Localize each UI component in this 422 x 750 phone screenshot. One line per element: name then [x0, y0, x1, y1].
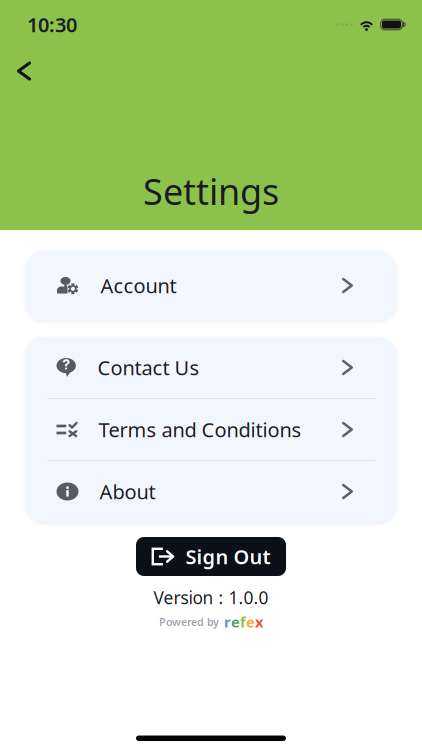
staticText: f	[240, 612, 246, 631]
button[interactable]: Back	[2, 49, 46, 93]
staticText: e	[246, 612, 255, 631]
staticText: Account	[100, 272, 176, 299]
staticText: r	[224, 612, 231, 631]
button[interactable]: About	[26, 461, 396, 522]
staticText: Version : 1.0.0	[153, 586, 268, 609]
staticText: Powered by	[159, 615, 219, 629]
staticText: Contact Us	[97, 354, 199, 381]
staticText: e	[231, 612, 240, 631]
staticText: Terms and Conditions	[98, 416, 301, 443]
button[interactable]: Terms and Conditions	[26, 399, 396, 460]
staticText: Sign Out	[185, 543, 270, 570]
staticText: Settings	[143, 167, 279, 215]
button[interactable]: Account	[26, 251, 396, 320]
button[interactable]: Contact Us	[26, 337, 396, 398]
staticText: x	[255, 612, 263, 631]
button[interactable]: Sign Out	[136, 537, 286, 576]
staticText: About	[99, 478, 155, 505]
staticText: 10:30	[27, 11, 77, 38]
